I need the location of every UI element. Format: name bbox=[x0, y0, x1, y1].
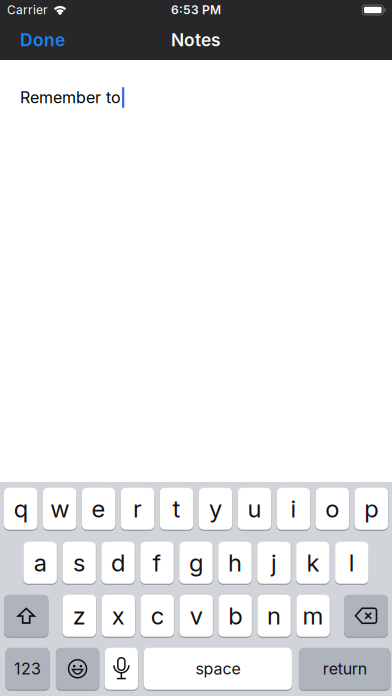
button[interactable]: y bbox=[199, 488, 232, 530]
button[interactable]: Done bbox=[20, 30, 65, 50]
button[interactable]: Emoji bbox=[56, 648, 99, 690]
staticText: p bbox=[364, 495, 378, 523]
staticText: v bbox=[190, 602, 203, 630]
staticText: g bbox=[189, 549, 203, 577]
staticText: Done bbox=[20, 30, 65, 50]
button[interactable]: space bbox=[144, 648, 292, 690]
staticText: h bbox=[228, 549, 242, 577]
button[interactable]: e bbox=[82, 488, 115, 530]
staticText: n bbox=[267, 602, 281, 630]
button[interactable]: t bbox=[160, 488, 193, 530]
staticText: space bbox=[195, 659, 240, 678]
staticText: q bbox=[14, 495, 28, 523]
button[interactable]: v bbox=[179, 595, 213, 637]
staticText: d bbox=[111, 549, 125, 577]
staticText: b bbox=[228, 602, 242, 630]
button[interactable]: x bbox=[102, 595, 135, 637]
staticText: e bbox=[92, 495, 106, 523]
staticText: w bbox=[50, 495, 69, 523]
staticText: x bbox=[112, 602, 125, 630]
staticText: i bbox=[290, 495, 296, 523]
button[interactable]: z bbox=[63, 595, 96, 637]
staticText: 123 bbox=[14, 659, 41, 678]
button[interactable]: Delete bbox=[344, 595, 388, 637]
staticText: return bbox=[323, 659, 367, 678]
button[interactable]: m bbox=[296, 595, 330, 637]
staticText: Carrier bbox=[7, 3, 48, 17]
button[interactable]: b bbox=[218, 595, 252, 637]
staticText: Notes bbox=[171, 30, 221, 50]
button[interactable]: u bbox=[238, 488, 271, 530]
staticText: y bbox=[209, 495, 222, 523]
staticText: z bbox=[73, 602, 86, 630]
staticText: t bbox=[172, 495, 180, 523]
button[interactable]: r bbox=[121, 488, 154, 530]
button[interactable]: c bbox=[140, 595, 174, 637]
staticText: m bbox=[303, 602, 324, 630]
button[interactable]: h bbox=[218, 542, 252, 584]
button[interactable]: a bbox=[23, 542, 57, 584]
staticText: 6:53 PM bbox=[171, 3, 221, 17]
staticText: Remember to bbox=[20, 88, 121, 107]
button[interactable]: f bbox=[140, 542, 174, 584]
button[interactable]: Shift bbox=[4, 595, 48, 637]
staticText: u bbox=[247, 495, 261, 523]
button[interactable]: o bbox=[316, 488, 349, 530]
staticText: c bbox=[151, 602, 164, 630]
button[interactable]: Dictate bbox=[105, 648, 138, 690]
button[interactable]: j bbox=[257, 542, 291, 584]
staticText: f bbox=[152, 549, 161, 577]
button[interactable]: i bbox=[277, 488, 310, 530]
staticText: r bbox=[133, 495, 142, 523]
button[interactable]: p bbox=[355, 488, 388, 530]
button[interactable]: 123 bbox=[6, 648, 50, 690]
button[interactable]: k bbox=[296, 542, 330, 584]
button[interactable]: q bbox=[4, 488, 37, 530]
button[interactable]: n bbox=[257, 595, 291, 637]
button[interactable]: w bbox=[43, 488, 76, 530]
button[interactable]: return bbox=[299, 648, 390, 690]
staticText: j bbox=[271, 549, 277, 577]
staticText: l bbox=[349, 549, 355, 577]
staticText: a bbox=[34, 549, 47, 577]
button[interactable]: s bbox=[62, 542, 96, 584]
staticText: s bbox=[73, 549, 85, 577]
staticText: k bbox=[306, 549, 319, 577]
button[interactable]: d bbox=[101, 542, 135, 584]
button[interactable]: g bbox=[179, 542, 213, 584]
staticText: o bbox=[325, 495, 339, 523]
button[interactable]: l bbox=[335, 542, 368, 584]
